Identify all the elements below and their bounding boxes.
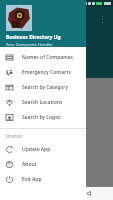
staticText: Update App [22, 146, 51, 153]
button[interactable]: Search by Category [0, 80, 86, 95]
staticText: Search Locations [22, 99, 63, 106]
staticText: Business Directory Ug [6, 34, 61, 41]
staticText: Names of Companies [22, 54, 73, 61]
staticText: About [22, 161, 37, 168]
button[interactable]: Exit App [0, 172, 86, 187]
button[interactable]: Search by Logos [0, 110, 86, 125]
button[interactable]: Back [82, 187, 95, 200]
button[interactable]: Names of Companies [0, 50, 86, 65]
staticText: Your Companies Handler [6, 42, 53, 47]
staticText: Interact [6, 133, 23, 139]
staticText: Search by Logos [22, 114, 61, 121]
staticText: Emergency Contacts [22, 69, 71, 76]
button[interactable]: More options [98, 13, 106, 25]
button[interactable]: Search Locations [0, 95, 86, 110]
staticText: Exit App [22, 176, 42, 183]
button[interactable]: Emergency Contacts [0, 65, 86, 80]
button[interactable]: About [0, 157, 86, 172]
button[interactable]: Update App [0, 142, 86, 157]
staticText: Search by Category [22, 84, 69, 91]
